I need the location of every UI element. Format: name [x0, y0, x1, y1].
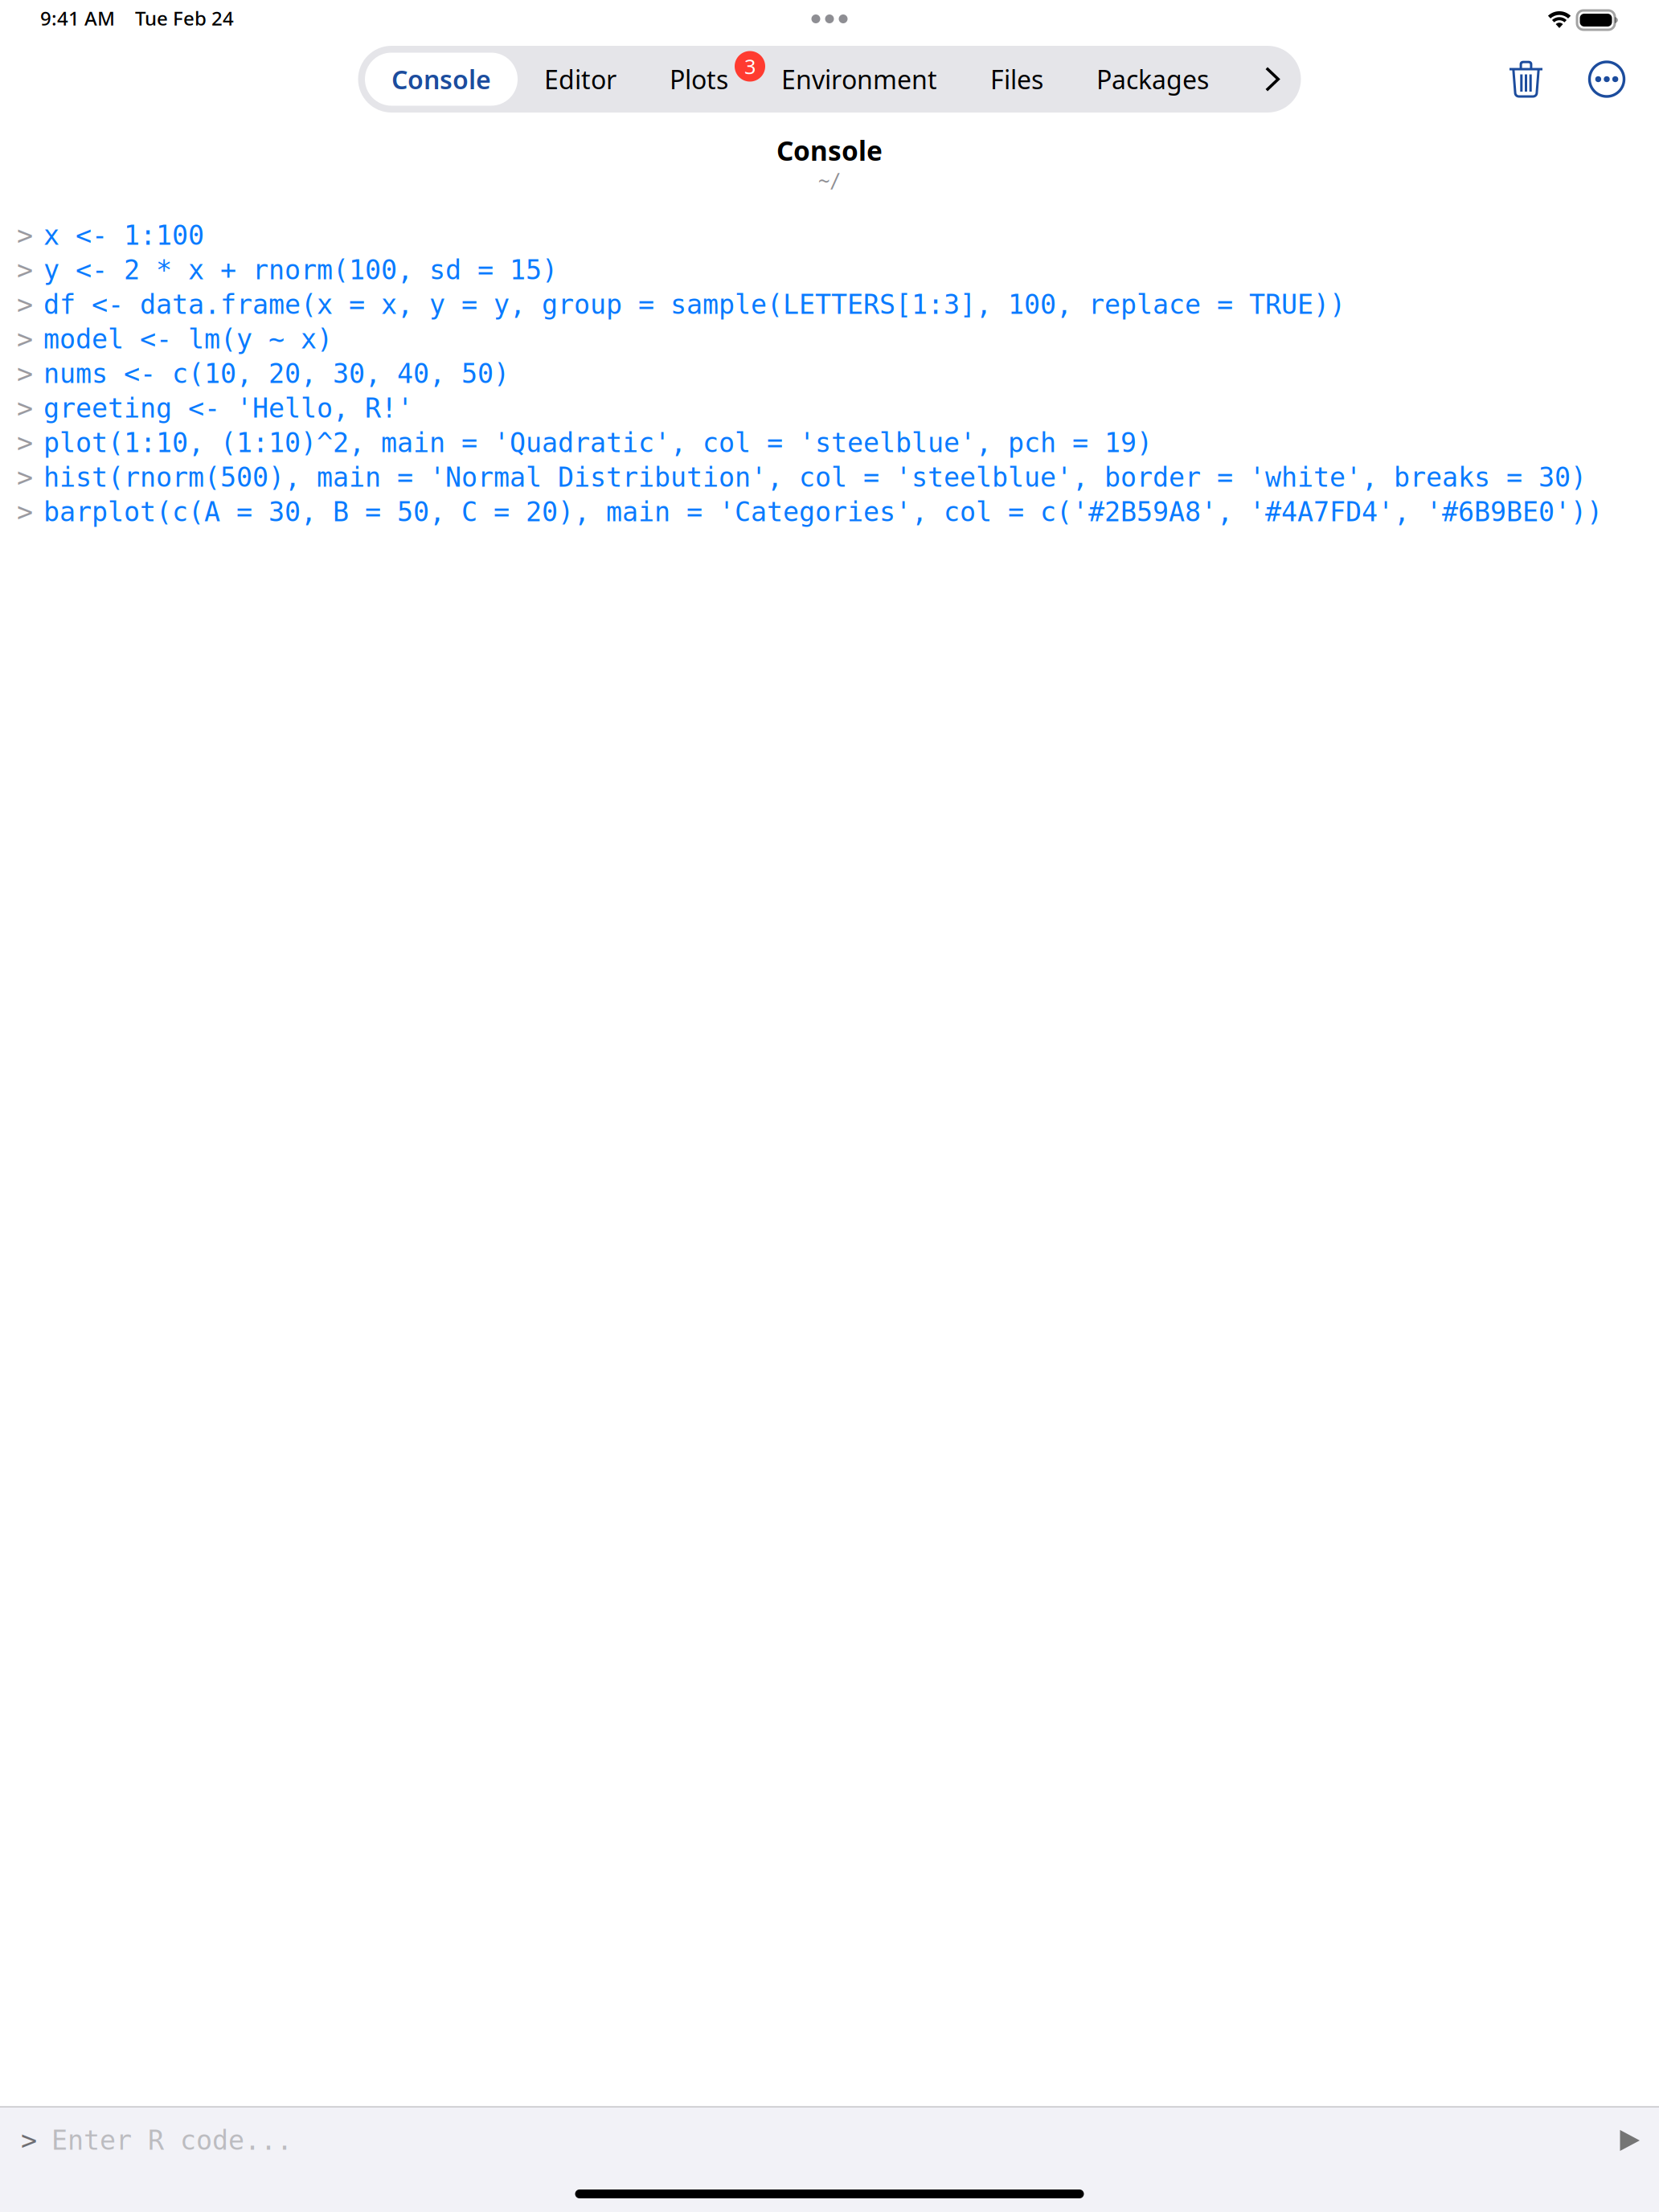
staticText: 3 — [744, 53, 756, 80]
staticText: Console — [776, 133, 883, 168]
staticText: Files — [990, 62, 1043, 96]
staticText: model <- lm(y ~ x) — [43, 324, 333, 354]
staticText: Environment — [781, 62, 937, 96]
staticText: 9:41 AM — [40, 5, 115, 31]
button[interactable]: Files — [964, 53, 1070, 106]
staticText: hist(rnorm(500), main = 'Normal Distribu… — [43, 462, 1587, 493]
staticText: > — [17, 324, 33, 354]
staticText: > — [17, 255, 33, 285]
button[interactable] — [1608, 2118, 1652, 2163]
button[interactable] — [1495, 50, 1557, 108]
staticText: Packages — [1096, 62, 1209, 96]
button[interactable] — [1579, 51, 1635, 107]
staticText: plot(1:10, (1:10)^2, main = 'Quadratic',… — [43, 428, 1153, 458]
staticText: Plots — [670, 62, 728, 96]
staticText: x <- 1:100 — [43, 220, 204, 251]
staticText: > — [17, 497, 33, 527]
staticText: > — [21, 2125, 37, 2156]
staticText: y <- 2 * x + rnorm(100, sd = 15) — [43, 255, 558, 285]
button[interactable]: Plots — [643, 53, 755, 106]
staticText: > — [17, 393, 33, 424]
staticText: barplot(c(A = 30, B = 50, C = 20), main … — [43, 497, 1603, 527]
button[interactable]: Console — [365, 53, 518, 106]
staticText: Console — [391, 62, 491, 96]
staticText: Editor — [544, 62, 616, 96]
button[interactable]: Environment — [755, 53, 964, 106]
staticText: > — [17, 428, 33, 458]
staticText: nums <- c(10, 20, 30, 40, 50) — [43, 359, 510, 389]
staticText: > — [17, 220, 33, 251]
staticText: > — [17, 359, 33, 389]
staticText: df <- data.frame(x = x, y = y, group = s… — [43, 289, 1346, 320]
staticText: > — [17, 289, 33, 320]
button[interactable]: Editor — [518, 53, 643, 106]
staticText: Tue Feb 24 — [135, 5, 234, 31]
button[interactable] — [1235, 53, 1294, 106]
button[interactable]: Packages — [1070, 53, 1235, 106]
staticText: ~/ — [818, 170, 841, 192]
staticText: Enter R code... — [51, 2125, 293, 2156]
staticText: > — [17, 462, 33, 493]
staticText: greeting <- 'Hello, R!' — [43, 393, 413, 424]
